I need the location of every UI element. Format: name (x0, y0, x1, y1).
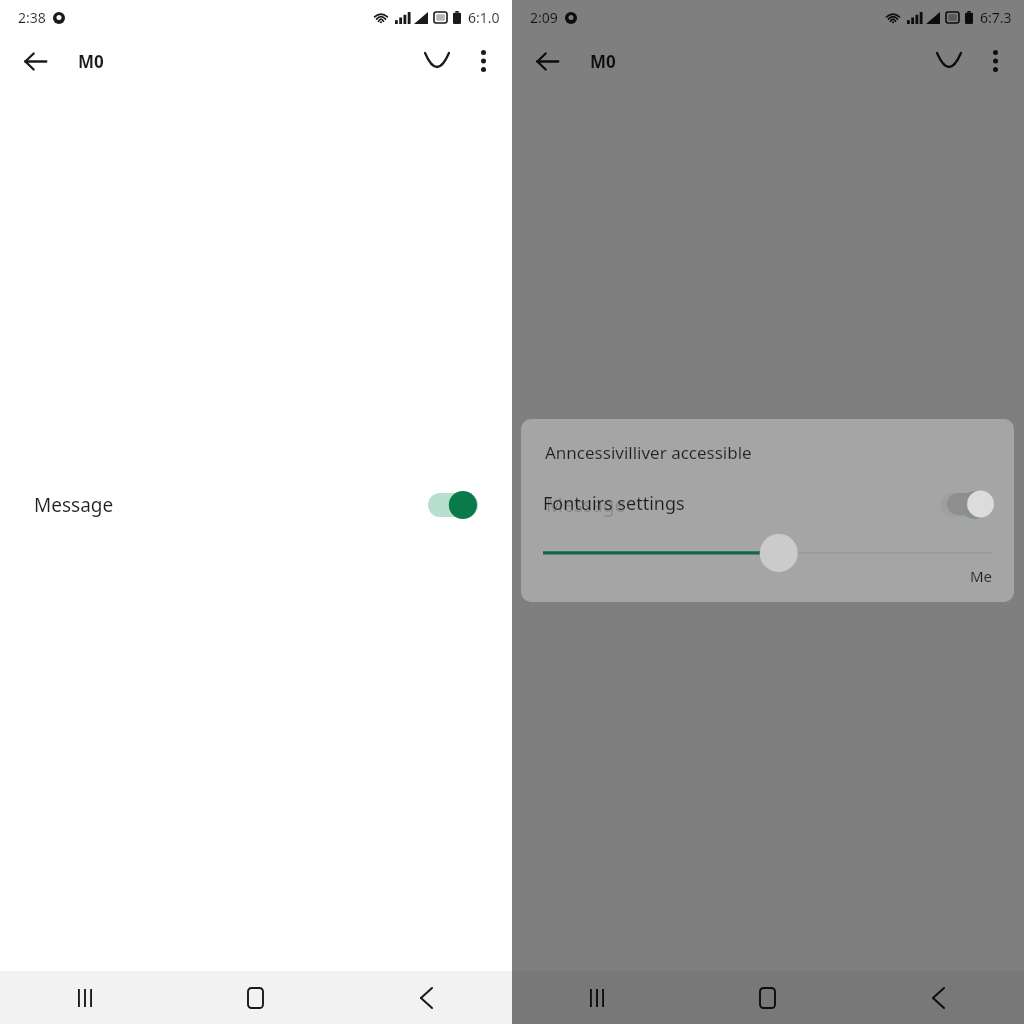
button[interactable]: Message toggle (940, 490, 990, 520)
button[interactable]: Back (853, 971, 1024, 1024)
button[interactable]: Font size slider (521, 534, 1014, 578)
staticText: 6:7.3 (980, 8, 1012, 27)
staticText: 2:38 (18, 8, 46, 27)
button[interactable]: Back (524, 38, 570, 84)
button[interactable]: Recents (0, 971, 170, 1024)
button[interactable]: Home (170, 971, 341, 1024)
staticText: M0 (78, 50, 104, 73)
button[interactable]: Recents (512, 971, 682, 1024)
staticText: Message (34, 492, 114, 518)
staticText: M0 (590, 50, 616, 73)
button[interactable]: Back (341, 971, 512, 1024)
button[interactable]: Settings toggle (947, 490, 994, 518)
staticText: 2:09 (530, 8, 558, 27)
button[interactable]: Smile (414, 38, 460, 84)
staticText: Me (969, 566, 992, 586)
staticText: Message (546, 492, 626, 518)
button[interactable]: More options (972, 38, 1018, 84)
button[interactable]: More options (460, 38, 506, 84)
button[interactable]: Smile (926, 38, 972, 84)
button[interactable]: Message toggle (428, 490, 478, 520)
button[interactable]: Message (8, 467, 504, 543)
button[interactable]: Message (520, 467, 1016, 543)
staticText: 6:1.0 (468, 8, 500, 27)
button[interactable]: Back (12, 38, 58, 84)
staticText: Anncessivilliver accessible (545, 441, 752, 464)
staticText: Fontuirs settings (543, 491, 685, 516)
button[interactable]: Home (682, 971, 853, 1024)
